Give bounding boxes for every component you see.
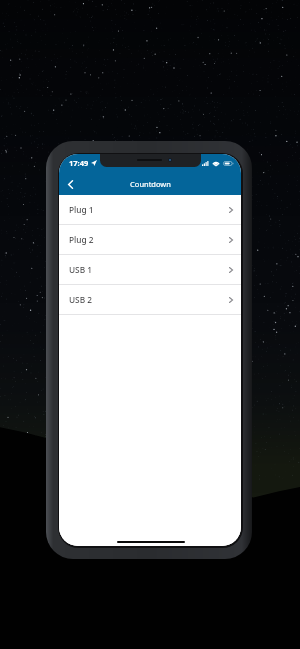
staticText: Plug 1 [69, 204, 94, 215]
button[interactable]: Plug 2 [59, 225, 241, 254]
button[interactable]: USB 1 [59, 255, 241, 284]
button[interactable]: Back [60, 174, 80, 194]
staticText: 17:49 [69, 158, 89, 168]
staticText: Countdown [130, 179, 171, 189]
staticText: USB 2 [69, 294, 93, 305]
staticText: Plug 2 [69, 234, 94, 245]
button[interactable]: Plug 1 [59, 195, 241, 224]
button[interactable]: USB 2 [59, 285, 241, 314]
staticText: USB 1 [69, 264, 93, 275]
